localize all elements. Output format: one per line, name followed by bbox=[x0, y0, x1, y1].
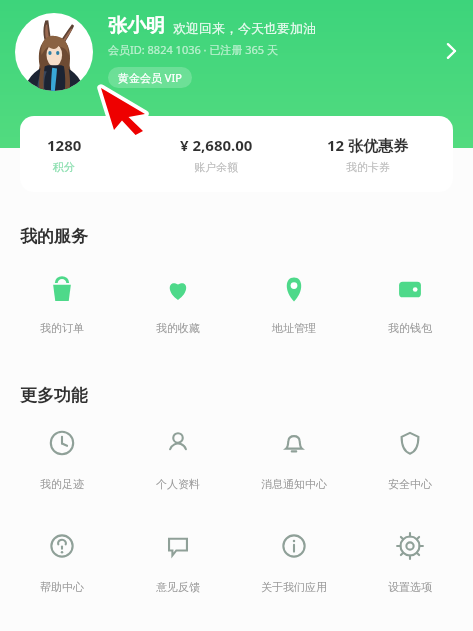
button[interactable]: 我的收藏 bbox=[120, 276, 236, 335]
staticText: 黄金会员 VIP bbox=[118, 70, 182, 85]
staticText: 消息通知中心 bbox=[261, 477, 327, 491]
button[interactable]: 帮助中心 bbox=[3, 532, 120, 594]
staticText: 我的服务 bbox=[20, 226, 88, 247]
button[interactable]: 意见反馈 bbox=[120, 532, 236, 594]
staticText: 我的卡券 bbox=[346, 160, 390, 174]
button[interactable]: 设置选项 bbox=[352, 532, 468, 594]
button[interactable]: 安全中心 bbox=[352, 429, 468, 491]
staticText: 我的订单 bbox=[40, 321, 84, 335]
staticText: 1280 bbox=[47, 135, 82, 155]
button[interactable]: ¥ 2,680.00 bbox=[140, 135, 292, 174]
staticText: 欢迎回来，今天也要加油 bbox=[173, 20, 316, 36]
staticText: 账户余额 bbox=[194, 160, 238, 174]
button[interactable]: 消息通知中心 bbox=[236, 429, 352, 491]
button[interactable]: 我的足迹 bbox=[3, 429, 120, 491]
button[interactable]: 我的订单 bbox=[3, 276, 120, 335]
button[interactable]: View profile details bbox=[436, 36, 466, 66]
button[interactable]: 1280 bbox=[20, 135, 140, 174]
button[interactable]: 黄金会员 VIP bbox=[108, 67, 192, 88]
button[interactable]: 个人资料 bbox=[120, 429, 236, 491]
button[interactable]: 12 张优惠券 bbox=[292, 135, 444, 174]
staticText: 更多功能 bbox=[20, 385, 88, 406]
staticText: 我的钱包 bbox=[388, 321, 432, 335]
button[interactable]: 我的钱包 bbox=[352, 276, 468, 335]
staticText: 意见反馈 bbox=[156, 580, 200, 594]
button[interactable]: 地址管理 bbox=[236, 276, 352, 335]
staticText: 我的收藏 bbox=[156, 321, 200, 335]
staticText: 帮助中心 bbox=[40, 580, 84, 594]
staticText: 安全中心 bbox=[388, 477, 432, 491]
staticText: 张小明 bbox=[108, 14, 165, 38]
staticText: 地址管理 bbox=[272, 321, 316, 335]
staticText: 我的足迹 bbox=[40, 477, 84, 491]
staticText: 会员ID: 8824 1036 · 已注册 365 天 bbox=[108, 42, 279, 57]
staticText: 个人资料 bbox=[156, 477, 200, 491]
button[interactable]: Profile avatar bbox=[15, 13, 93, 91]
staticText: 积分 bbox=[53, 160, 75, 174]
button[interactable]: 关于我们应用 bbox=[236, 532, 352, 594]
staticText: 关于我们应用 bbox=[261, 580, 327, 594]
staticText: 设置选项 bbox=[388, 580, 432, 594]
staticText: 12 张优惠券 bbox=[327, 135, 409, 155]
staticText: ¥ 2,680.00 bbox=[180, 135, 253, 155]
